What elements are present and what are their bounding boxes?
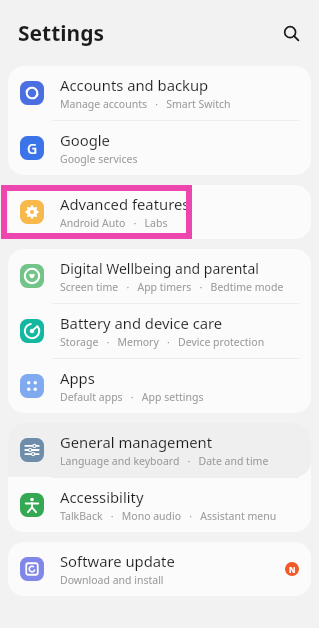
staticText: Software update bbox=[60, 551, 175, 571]
staticText: General management bbox=[60, 432, 213, 452]
staticText: Download and install bbox=[60, 573, 164, 587]
staticText: Manage accounts · Smart Switch bbox=[60, 97, 231, 111]
staticText: Settings bbox=[18, 19, 105, 48]
staticText: Accessibility bbox=[60, 487, 144, 507]
staticText: Storage · Memory · Device protection bbox=[60, 335, 265, 349]
staticText: G bbox=[27, 139, 38, 158]
staticText: Default apps · App settings bbox=[60, 390, 204, 404]
staticText: Apps bbox=[60, 368, 95, 388]
button[interactable]: General management bbox=[8, 423, 311, 477]
staticText: Language and keyboard · Date and time bbox=[60, 454, 269, 468]
staticText: Google bbox=[60, 130, 110, 150]
button[interactable]: Digital Wellbeing and parental controls bbox=[8, 249, 311, 303]
staticText: Digital Wellbeing and parental controls bbox=[60, 259, 299, 278]
button[interactable]: Accounts and backup bbox=[8, 66, 311, 120]
staticText: Google services bbox=[60, 152, 138, 166]
button[interactable]: Search bbox=[274, 16, 308, 50]
button[interactable]: Software update bbox=[8, 542, 311, 596]
staticText: Accounts and backup bbox=[60, 75, 209, 95]
button[interactable]: G bbox=[8, 121, 311, 175]
button[interactable]: Advanced features bbox=[8, 185, 311, 239]
staticText: N bbox=[289, 564, 296, 575]
staticText: TalkBack · Mono audio · Assistant menu bbox=[60, 509, 277, 523]
staticText: Android Auto · Labs bbox=[60, 216, 168, 230]
button[interactable]: Battery and device care bbox=[8, 304, 311, 358]
staticText: Screen time · App timers · Bedtime mode bbox=[60, 280, 284, 294]
button[interactable]: Accessibility bbox=[8, 478, 311, 532]
staticText: Battery and device care bbox=[60, 313, 223, 333]
staticText: Advanced features bbox=[60, 194, 190, 214]
button[interactable]: Apps bbox=[8, 359, 311, 413]
